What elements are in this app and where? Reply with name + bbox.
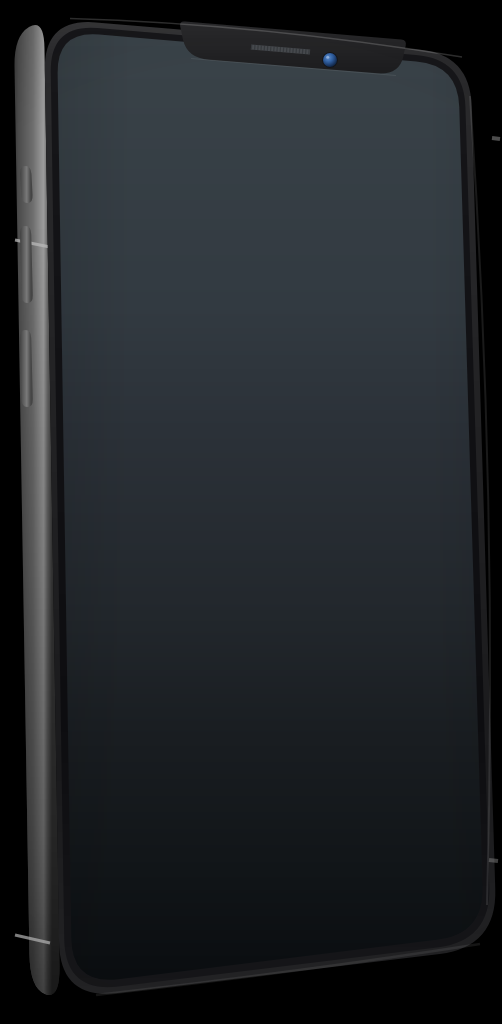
button[interactable]: Phone device mockup, screen off bbox=[0, 0, 502, 1024]
